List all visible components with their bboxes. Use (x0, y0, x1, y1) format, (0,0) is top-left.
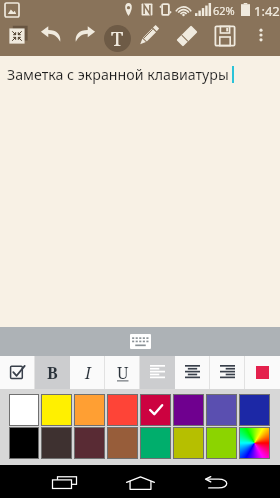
button[interactable]: Current colour (245, 356, 280, 389)
button[interactable]: Checklist (0, 356, 35, 389)
button[interactable]: Colour 8 (239, 394, 270, 426)
button[interactable]: Text tool (104, 25, 131, 52)
button[interactable]: Colour 1 (9, 427, 39, 459)
staticText: B (47, 362, 58, 384)
button[interactable]: B (35, 356, 70, 389)
button[interactable]: Eraser (175, 24, 199, 48)
button[interactable]: Undo (37, 20, 65, 48)
button[interactable]: Colour 2 (41, 427, 72, 459)
button[interactable]: Recent apps (48, 466, 81, 498)
button[interactable]: Back (200, 466, 233, 498)
button[interactable]: Fit to screen (5, 21, 31, 47)
staticText: T (111, 25, 124, 52)
staticText: Заметка с экранной клавиатуры (7, 65, 229, 84)
button[interactable]: More options (250, 24, 272, 46)
button[interactable]: Colour 4 (107, 394, 138, 426)
button[interactable]: Hide keyboard (130, 334, 151, 349)
button[interactable]: Colour 4 (107, 427, 138, 459)
button[interactable]: U (105, 356, 140, 389)
button[interactable]: Align center (175, 356, 210, 389)
button[interactable]: Align right (210, 356, 245, 389)
button[interactable]: Colour 7 (206, 427, 237, 459)
button[interactable]: Colour 5 (140, 394, 171, 426)
button[interactable]: Pen (137, 23, 161, 47)
button[interactable]: Colour 2 (41, 394, 72, 426)
button[interactable]: Colour 3 (74, 394, 105, 426)
button[interactable]: Save (213, 24, 237, 48)
button[interactable]: Redo (70, 20, 98, 48)
button[interactable]: Colour 1 (9, 394, 39, 426)
button[interactable]: Home (124, 466, 157, 498)
button[interactable]: Colour 7 (206, 394, 237, 426)
staticText: U (117, 362, 129, 384)
button[interactable]: Colour 3 (74, 427, 105, 459)
staticText: I (85, 362, 91, 384)
button[interactable]: Colour 6 (173, 427, 204, 459)
button[interactable]: Colour 5 (140, 427, 171, 459)
button[interactable]: I (70, 356, 105, 389)
button[interactable]: Colour 6 (173, 394, 204, 426)
button[interactable]: Custom colour (239, 427, 270, 459)
button[interactable]: Align left (140, 356, 175, 389)
staticText: 1:42 (254, 2, 280, 20)
staticText: 62% (213, 3, 235, 18)
